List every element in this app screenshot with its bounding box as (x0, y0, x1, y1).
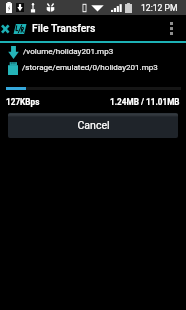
staticText: /volume/holiday201.mp3 (23, 47, 114, 56)
staticText: Cancel (77, 119, 110, 131)
staticText: /storage/emulated/0/holiday201.mp3 (22, 63, 158, 72)
button[interactable]: /volume/holiday201.mp3 (0, 44, 186, 59)
button[interactable]: Cancel (8, 113, 178, 138)
button[interactable]: More options (157, 15, 186, 41)
staticText: 12:12 PM (141, 3, 178, 13)
button[interactable]: /storage/emulated/0/holiday201.mp3 (0, 60, 186, 75)
staticText: File Transfers (32, 22, 96, 34)
staticText: 127KBps (6, 97, 40, 107)
staticText: 1.24MB / 11.01MB (110, 97, 180, 107)
